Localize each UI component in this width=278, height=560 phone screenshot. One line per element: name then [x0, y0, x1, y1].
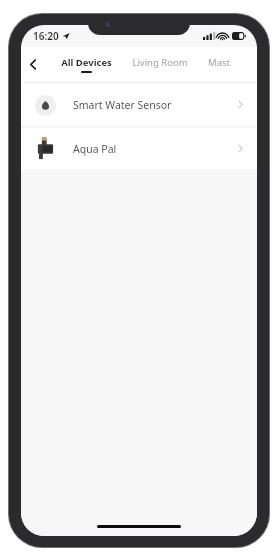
- button[interactable]: All Devices: [59, 54, 114, 75]
- staticText: Living Room: [132, 56, 188, 69]
- button[interactable]: Aqua Pal: [21, 128, 257, 169]
- button[interactable]: Back: [21, 52, 45, 76]
- staticText: Aqua Pal: [73, 142, 117, 156]
- staticText: Smart Water Sensor: [73, 98, 172, 112]
- button[interactable]: Smart Water Sensor: [21, 84, 257, 125]
- button[interactable]: Living Room: [130, 54, 190, 75]
- staticText: Mast: [208, 56, 230, 69]
- button[interactable]: Mast: [206, 54, 232, 75]
- staticText: All Devices: [61, 56, 112, 69]
- staticText: 16:20: [33, 29, 59, 43]
